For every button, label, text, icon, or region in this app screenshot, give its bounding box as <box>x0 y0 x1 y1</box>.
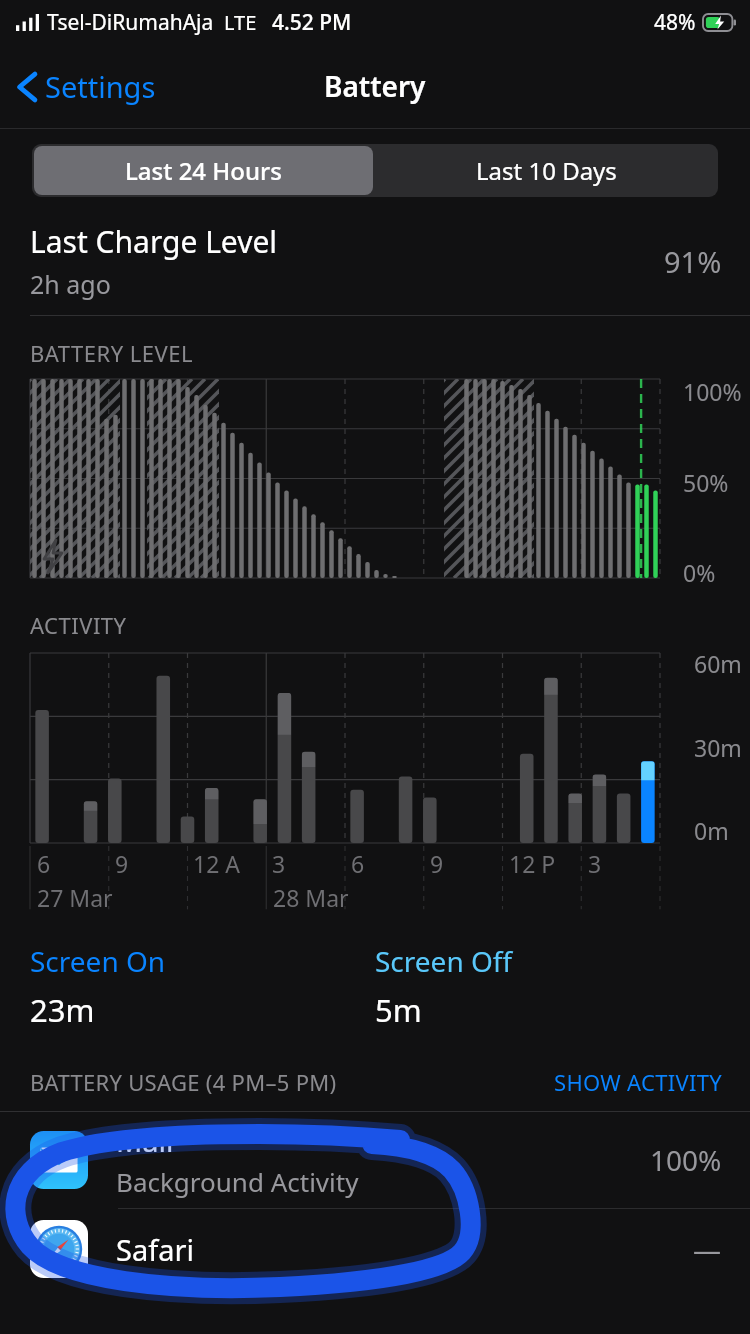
staticText: 0m <box>694 815 729 846</box>
button[interactable]: Last 24 Hours <box>34 146 373 195</box>
staticText: 28 Mar <box>273 882 349 913</box>
staticText: 2h ago <box>30 267 111 301</box>
staticText: Last Charge Level <box>30 221 278 262</box>
staticText: BATTERY LEVEL <box>30 338 194 368</box>
staticText: Screen Off <box>375 942 513 980</box>
staticText: ACTIVITY <box>30 610 127 640</box>
staticText: 23m <box>30 989 95 1031</box>
staticText: Battery <box>324 67 426 105</box>
staticText: 27 Mar <box>37 882 113 913</box>
staticText: 48% <box>654 8 696 37</box>
staticText: Last 10 Days <box>476 154 617 187</box>
other: Mail app icon <box>30 1131 88 1189</box>
staticText: Settings <box>45 67 156 106</box>
button[interactable]: Mail app icon <box>0 1112 750 1208</box>
staticText: 3 <box>588 848 602 879</box>
button[interactable]: Last 10 Days <box>375 144 718 197</box>
staticText: 9 <box>430 848 444 879</box>
staticText: 50% <box>683 467 729 498</box>
staticText: 6 <box>37 848 51 879</box>
button[interactable]: Safari app icon <box>0 1209 750 1289</box>
staticText: 30m <box>694 732 742 763</box>
staticText: 4.52 PM <box>272 8 352 37</box>
button[interactable]: Screen On <box>30 942 375 1031</box>
staticText: 9 <box>115 848 129 879</box>
button[interactable]: SHOW ACTIVITY <box>554 1067 722 1097</box>
staticText: 100% <box>683 376 742 407</box>
staticText: 12 A <box>193 848 240 879</box>
other: Safari app icon <box>30 1220 88 1278</box>
button[interactable]: Settings <box>12 67 156 106</box>
staticText: Last 24 Hours <box>125 154 282 187</box>
staticText: 5m <box>375 989 422 1031</box>
staticText: Screen On <box>30 942 166 980</box>
staticText: LTE <box>224 9 257 36</box>
staticText: Safari <box>116 1230 194 1269</box>
staticText: 60m <box>694 648 742 679</box>
staticText: SHOW ACTIVITY <box>554 1067 722 1097</box>
staticText: 100% <box>650 1141 722 1179</box>
staticText: Background Activity <box>116 1164 359 1199</box>
staticText: 6 <box>351 848 365 879</box>
button[interactable]: Screen Off <box>375 942 720 1031</box>
staticText: 12 P <box>509 848 556 879</box>
staticText: Mail <box>116 1121 174 1160</box>
staticText: — <box>693 1230 722 1268</box>
staticText: 0% <box>683 557 716 588</box>
staticText: BATTERY USAGE (4 PM–5 PM) <box>30 1067 554 1097</box>
staticText: 3 <box>272 848 286 879</box>
staticText: 91% <box>664 242 722 281</box>
staticText: Tsel-DiRumahAja <box>47 8 214 37</box>
